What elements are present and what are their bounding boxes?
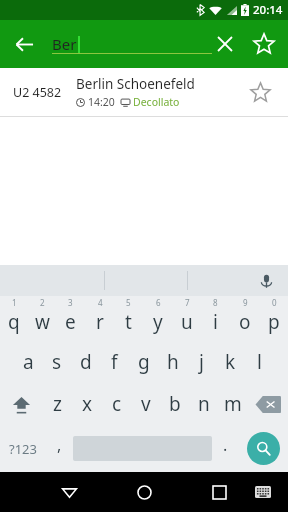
staticText: 20:14 xyxy=(253,2,283,18)
staticText: n xyxy=(198,391,210,417)
staticText: p xyxy=(268,309,280,335)
staticText: 14:20 xyxy=(88,95,115,109)
staticText: 3 xyxy=(68,297,73,308)
button[interactable]: 4 xyxy=(85,296,114,340)
button[interactable]: v xyxy=(131,383,160,425)
staticText: f xyxy=(111,349,118,375)
staticText: Ber xyxy=(52,34,77,54)
button[interactable]: n xyxy=(189,383,218,425)
staticText: w xyxy=(35,309,50,335)
button[interactable]: 6 xyxy=(143,296,172,340)
button[interactable]: , xyxy=(46,425,73,472)
staticText: 5 xyxy=(126,297,131,308)
button[interactable]: 5 xyxy=(114,296,143,340)
staticText: j xyxy=(199,349,204,375)
button[interactable]: Shift xyxy=(0,383,42,425)
staticText: 7 xyxy=(185,297,190,308)
staticText: 0 xyxy=(272,297,277,308)
button[interactable]: . xyxy=(212,425,239,472)
staticText: h xyxy=(167,349,179,375)
button[interactable]: Recents xyxy=(202,475,236,509)
button[interactable]: k xyxy=(216,340,245,383)
button[interactable]: 0 xyxy=(259,296,288,340)
staticText: i xyxy=(213,309,218,335)
button[interactable]: 3 xyxy=(56,296,85,340)
button[interactable]: c xyxy=(102,383,131,425)
staticText: ?123 xyxy=(9,440,37,458)
button[interactable]: d xyxy=(71,340,100,383)
staticText: 6 xyxy=(156,297,161,308)
staticText: z xyxy=(53,391,62,417)
staticText: a xyxy=(23,349,34,375)
staticText: k xyxy=(225,349,236,375)
staticText: l xyxy=(257,349,262,375)
staticText: 8 xyxy=(213,297,218,308)
staticText: g xyxy=(138,349,150,375)
button[interactable]: b xyxy=(160,383,189,425)
staticText: , xyxy=(57,434,62,456)
staticText: v xyxy=(141,391,151,417)
button[interactable]: f xyxy=(100,340,129,383)
staticText: x xyxy=(82,391,93,417)
button[interactable]: 1 xyxy=(0,296,28,340)
button[interactable]: Clear xyxy=(208,27,242,61)
staticText: 2 xyxy=(40,297,45,308)
button[interactable]: g xyxy=(129,340,158,383)
staticText: q xyxy=(8,309,20,335)
button[interactable]: x xyxy=(72,383,102,425)
button[interactable]: m xyxy=(218,383,247,425)
button[interactable]: Hide keyboard xyxy=(248,477,278,507)
staticText: y xyxy=(153,309,163,335)
staticText: 4 xyxy=(98,297,103,308)
button[interactable]: ?123 xyxy=(0,425,46,472)
staticText: Decollato xyxy=(133,95,180,109)
button[interactable]: U2 4582 xyxy=(0,68,288,117)
staticText: U2 4582 xyxy=(13,84,62,101)
staticText: 1 xyxy=(12,297,17,308)
button[interactable]: s xyxy=(42,340,71,383)
staticText: m xyxy=(224,391,242,417)
button[interactable]: Back xyxy=(52,475,86,509)
staticText: o xyxy=(239,309,251,335)
button[interactable]: 7 xyxy=(172,296,201,340)
button[interactable]: z xyxy=(42,383,72,425)
button[interactable]: 8 xyxy=(201,296,230,340)
staticText: d xyxy=(80,349,92,375)
staticText: c xyxy=(112,391,122,417)
staticText: Berlin Schoenefeld xyxy=(76,75,195,93)
button[interactable]: Voice input xyxy=(252,267,280,295)
button[interactable]: 2 xyxy=(28,296,56,340)
button[interactable]: Search xyxy=(239,425,288,472)
button[interactable]: Back xyxy=(6,26,42,62)
button[interactable]: 9 xyxy=(230,296,259,340)
staticText: b xyxy=(169,391,181,417)
staticText: s xyxy=(52,349,62,375)
staticText: . xyxy=(223,434,228,456)
button[interactable]: j xyxy=(187,340,216,383)
button[interactable]: l xyxy=(245,340,274,383)
button[interactable]: Home xyxy=(127,475,161,509)
button[interactable]: a xyxy=(14,340,42,383)
staticText: t xyxy=(125,309,132,335)
staticText: 9 xyxy=(243,297,248,308)
button[interactable]: Backspace xyxy=(247,383,288,425)
button[interactable]: Favorite flight xyxy=(240,72,280,112)
staticText: r xyxy=(96,309,104,335)
staticText: u xyxy=(181,309,193,335)
button[interactable]: h xyxy=(158,340,187,383)
staticText: e xyxy=(65,309,76,335)
button[interactable]: Favorite xyxy=(246,26,282,62)
